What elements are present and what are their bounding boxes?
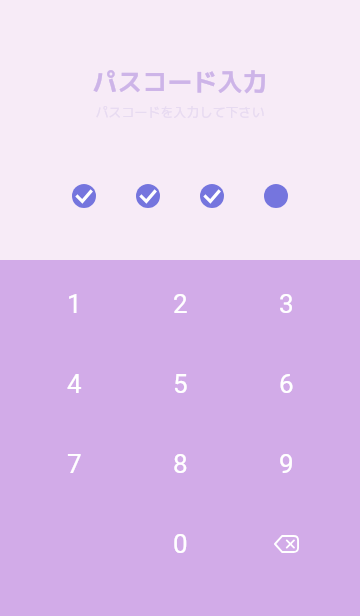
button[interactable]: 1: [21, 264, 127, 344]
staticText: 3: [279, 289, 294, 319]
staticText: 6: [279, 369, 294, 399]
button[interactable]: 6: [233, 344, 339, 424]
button[interactable]: 9: [233, 424, 339, 504]
staticText: 0: [173, 529, 188, 559]
staticText: 5: [173, 369, 188, 399]
button[interactable]: 0: [127, 504, 233, 584]
staticText: 1: [67, 289, 82, 319]
button[interactable]: 7: [21, 424, 127, 504]
staticText: パスコードを入力して下さい: [95, 103, 265, 121]
other: Backspace: [268, 526, 304, 562]
staticText: 9: [279, 449, 294, 479]
button[interactable]: 8: [127, 424, 233, 504]
staticText: 4: [67, 369, 82, 399]
button[interactable]: 2: [127, 264, 233, 344]
staticText: 2: [173, 289, 188, 319]
button[interactable]: Backspace: [233, 504, 339, 584]
staticText: 8: [173, 449, 188, 479]
staticText: パスコード入力: [92, 64, 268, 99]
button[interactable]: 4: [21, 344, 127, 424]
button[interactable]: 5: [127, 344, 233, 424]
button[interactable]: 3: [233, 264, 339, 344]
staticText: 7: [67, 449, 82, 479]
